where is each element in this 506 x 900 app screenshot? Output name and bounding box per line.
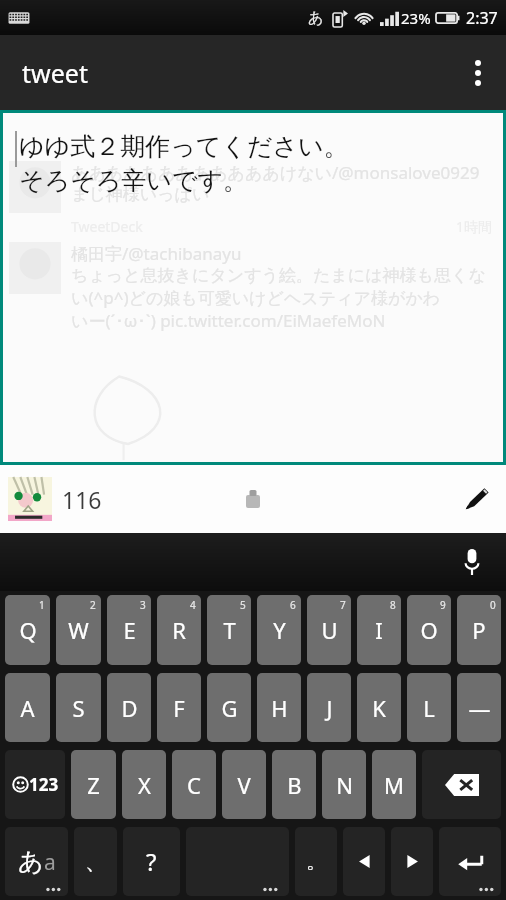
staticText: 6	[290, 598, 296, 612]
button[interactable]: S	[56, 673, 101, 742]
button[interactable]: V	[222, 750, 266, 819]
button[interactable]: W	[56, 595, 101, 665]
staticText: B	[287, 770, 302, 800]
staticText: TweetDeck	[71, 217, 143, 236]
staticText: 1時間	[456, 217, 493, 236]
button[interactable]: F	[157, 673, 201, 742]
button[interactable]: J	[307, 673, 351, 742]
staticText: A	[20, 693, 35, 723]
staticText: 0	[490, 598, 496, 612]
staticText: D	[121, 693, 138, 723]
button[interactable]: Space	[186, 827, 289, 896]
staticText: W	[68, 615, 89, 645]
staticText: ああああああああああああけない/@monsalove0929	[71, 161, 480, 184]
button[interactable]: P	[457, 595, 501, 665]
button[interactable]: —	[457, 673, 501, 742]
button[interactable]: Y	[257, 595, 301, 665]
button[interactable]: C	[172, 750, 216, 819]
staticText: E	[123, 615, 136, 645]
staticText: U	[321, 615, 338, 645]
staticText: M	[384, 770, 404, 800]
button[interactable]: Q	[5, 595, 50, 665]
button[interactable]: A	[5, 673, 50, 742]
button[interactable]: 123	[5, 750, 65, 819]
staticText: Y	[273, 615, 286, 645]
staticText: 123	[29, 773, 59, 796]
staticText: C	[187, 770, 201, 800]
staticText: いー(´･ω･`) pic.twitter.com/EiMaefeMoN	[71, 309, 386, 332]
button[interactable]: L	[407, 673, 451, 742]
staticText: —	[468, 693, 491, 723]
button[interactable]: Compose tweet	[446, 469, 506, 529]
staticText: 4	[190, 598, 196, 612]
button[interactable]: Attach image	[233, 479, 273, 519]
staticText: R	[172, 615, 186, 645]
staticText: 、	[85, 848, 107, 876]
staticText: 8	[390, 598, 396, 612]
button[interactable]: Switch language	[5, 827, 68, 896]
staticText: 116	[62, 484, 102, 515]
button[interactable]: E	[107, 595, 151, 665]
button[interactable]: Move right	[391, 827, 433, 896]
staticText: 1	[39, 598, 45, 612]
staticText: あ	[18, 846, 44, 877]
staticText: K	[372, 693, 386, 723]
staticText: ゆゆ式２期作ってください。	[19, 131, 349, 162]
staticText: 橘田宇/@tachibanayu	[71, 242, 242, 265]
staticText: ちょっと息抜きにタンすう絵。たまには神様も思くな	[71, 265, 486, 286]
staticText: V	[237, 770, 251, 800]
staticText: L	[423, 693, 435, 723]
button[interactable]: H	[257, 673, 301, 742]
staticText: まじ神様いっぱい	[71, 184, 210, 205]
button[interactable]: 。	[295, 827, 337, 896]
button[interactable]: Enter	[439, 827, 501, 896]
button[interactable]: K	[357, 673, 401, 742]
button[interactable]: 116	[8, 477, 102, 521]
staticText: S	[72, 693, 85, 723]
staticText: a	[44, 848, 56, 877]
staticText: Q	[19, 615, 37, 645]
staticText: P	[472, 615, 486, 645]
button[interactable]: G	[207, 673, 251, 742]
staticText: 3	[140, 598, 146, 612]
staticText: ?	[146, 845, 157, 878]
staticText: 2	[90, 598, 96, 612]
staticText: tweet	[22, 56, 88, 90]
button[interactable]: U	[307, 595, 351, 665]
staticText: O	[420, 615, 438, 645]
staticText: Z	[87, 770, 100, 800]
button[interactable]: B	[272, 750, 316, 819]
staticText: X	[138, 770, 151, 800]
staticText: 5	[240, 598, 246, 612]
button[interactable]: D	[107, 673, 151, 742]
staticText: 23%	[401, 8, 431, 28]
button[interactable]: N	[322, 750, 366, 819]
button[interactable]: O	[407, 595, 451, 665]
button[interactable]: I	[357, 595, 401, 665]
button[interactable]: R	[157, 595, 201, 665]
staticText: N	[336, 770, 353, 800]
button[interactable]: X	[122, 750, 166, 819]
staticText: あ	[308, 9, 324, 28]
staticText: 2:37	[466, 7, 498, 29]
staticText: I	[375, 615, 383, 645]
button[interactable]: Z	[71, 750, 116, 819]
button[interactable]: ああああああああああああけない/@monsalove0929	[3, 113, 503, 462]
button[interactable]: Voice input	[452, 542, 492, 582]
staticText: F	[173, 693, 185, 723]
staticText: G	[221, 693, 238, 723]
staticText: 7	[340, 598, 346, 612]
staticText: そろそろ辛いです。	[19, 165, 249, 196]
button[interactable]: M	[372, 750, 416, 819]
button[interactable]: Move left	[343, 827, 385, 896]
button[interactable]: T	[207, 595, 251, 665]
button[interactable]: Backspace	[422, 750, 501, 819]
button[interactable]: ?	[123, 827, 180, 896]
staticText: T	[223, 615, 236, 645]
staticText: 9	[440, 598, 446, 612]
button[interactable]: More options	[450, 45, 506, 101]
staticText: J	[326, 693, 333, 723]
staticText: 。	[306, 849, 326, 874]
staticText: い(^p^)どの娘も可愛いけどヘスティア様がかわ	[71, 286, 441, 309]
button[interactable]: 、	[74, 827, 117, 896]
